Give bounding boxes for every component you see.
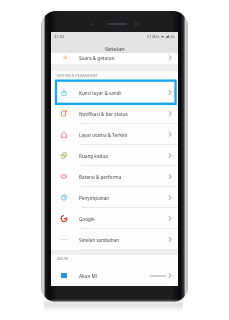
staticText: Akun Mi (79, 273, 97, 279)
button[interactable]: Baterai & performa (51, 166, 178, 187)
button[interactable]: Google (51, 208, 178, 229)
button[interactable]: Kunci layar & sandi (51, 82, 178, 103)
staticText: Ruang kedua (79, 153, 108, 159)
button[interactable]: Setelan tambahan (51, 229, 178, 250)
staticText: Google (79, 216, 95, 222)
staticText: 21:02 (54, 34, 65, 39)
staticText: xxxxxxxx (150, 273, 167, 278)
staticText: Baterai & performa (79, 174, 122, 180)
staticText: Setelan tambahan (79, 237, 120, 243)
staticText: Penyimpanan (79, 195, 110, 201)
staticText: Suara & getaran (79, 55, 115, 61)
staticText: Setelan (105, 45, 125, 53)
button[interactable]: Ruang kedua (51, 145, 178, 166)
staticText: SISTEM & PERANGKAT (57, 73, 98, 78)
staticText: Kunci layar & sandi (79, 90, 121, 96)
staticText: 4G (170, 34, 175, 39)
staticText: AKUN (57, 256, 68, 261)
staticText: 0,14K/d (147, 34, 160, 39)
button[interactable]: Notifikasi & bar status (51, 103, 178, 124)
staticText: Layar utama & Terkini (79, 132, 128, 138)
button[interactable]: Layar utama & Terkini (51, 124, 178, 145)
button[interactable]: Penyimpanan (51, 187, 178, 208)
staticText: Notifikasi & bar status (79, 111, 128, 117)
